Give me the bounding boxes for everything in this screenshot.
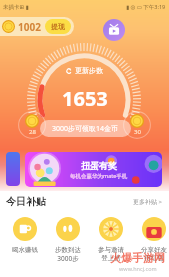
button[interactable]: 参与邀请 — [89, 217, 132, 262]
staticText: 30 — [134, 128, 141, 136]
button[interactable]: 分享好友 — [132, 217, 169, 262]
staticText: 28 — [29, 128, 36, 136]
staticText: 得红包 — [144, 254, 164, 262]
button[interactable]: 1002 — [0, 17, 74, 36]
button[interactable]: 3000步可领取14金币 — [40, 120, 131, 137]
staticText: 今日补贴 — [6, 195, 46, 208]
button[interactable]: 提现 — [45, 19, 71, 34]
staticText: www.hncj.com — [119, 265, 157, 272]
staticText: 更多补贴 > — [133, 198, 162, 206]
button[interactable]: 扭蛋有奖 — [25, 152, 162, 187]
button[interactable]: 步数到达 — [46, 217, 89, 263]
staticText: 更新步数 — [75, 66, 103, 75]
button[interactable]: Previous banner — [6, 152, 20, 186]
staticText: 3000步可领取14金币 — [52, 124, 119, 134]
staticText: 步数到达 — [55, 246, 81, 254]
staticText: 喝水赚钱 — [12, 246, 38, 254]
staticText: 1002 — [18, 20, 41, 34]
staticText: 1653 — [62, 85, 108, 112]
staticText: ▮ ◎ ▭ 下午3:19 — [126, 3, 166, 11]
staticText: 提现 — [51, 22, 65, 31]
staticText: 扭蛋有奖 — [81, 160, 117, 171]
button[interactable]: Reward 30 — [123, 111, 151, 139]
button[interactable]: 喝水赚钱 — [3, 217, 46, 254]
staticText: 火爆手游网 — [110, 251, 165, 265]
staticText: 3000步 — [57, 254, 79, 263]
button[interactable]: Reward 28 — [18, 111, 46, 139]
staticText: 登上榜 — [101, 254, 121, 262]
staticText: 分享好友 — [141, 246, 167, 254]
staticText: 参与邀请 — [98, 246, 124, 254]
button[interactable]: 更多补贴 > — [133, 198, 162, 206]
staticText: 未插卡⊞ ▮ — [3, 3, 29, 11]
button[interactable]: Watch video — [103, 19, 125, 41]
staticText: 每机会赢华为mate手机 — [70, 172, 128, 180]
